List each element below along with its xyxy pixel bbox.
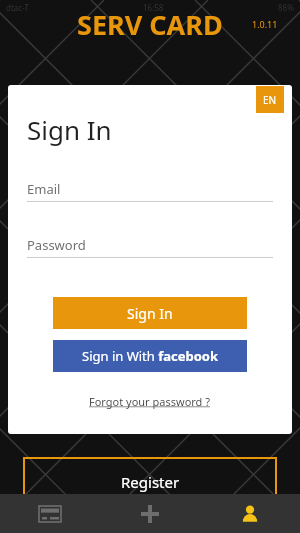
button[interactable]: Profile <box>200 494 300 533</box>
button[interactable]: Sign In <box>53 297 247 329</box>
button[interactable]: Add <box>100 494 200 533</box>
staticText: Register <box>121 472 180 492</box>
button[interactable]: Cards <box>0 494 100 533</box>
staticText: SERV CARD <box>77 6 223 43</box>
staticText: Sign In <box>127 304 173 323</box>
button[interactable]: EN <box>256 86 284 113</box>
button[interactable]: Forgot your password ? <box>85 390 215 413</box>
staticText: 88% <box>278 2 294 13</box>
button[interactable]: Sign in With facebook <box>53 340 247 372</box>
staticText: Sign In <box>27 112 112 147</box>
button[interactable]: Email <box>27 180 273 202</box>
staticText: 16:58 <box>143 2 164 13</box>
button[interactable]: Password <box>27 236 273 258</box>
staticText: 1.0.11 <box>252 18 278 30</box>
button[interactable]: Register <box>23 457 277 507</box>
staticText: Email <box>27 180 61 198</box>
staticText: Sign in With facebook <box>82 347 219 365</box>
staticText: EN <box>263 93 277 107</box>
staticText: dtac-T <box>6 2 29 13</box>
staticText: Password <box>27 236 86 254</box>
